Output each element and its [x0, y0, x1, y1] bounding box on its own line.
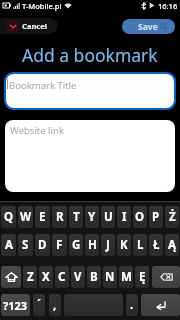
button[interactable]: S: [18, 234, 33, 256]
staticText: A: [5, 237, 13, 253]
button[interactable]: Save: [122, 19, 175, 34]
button[interactable]: P: [149, 206, 163, 228]
staticText: M: [121, 269, 132, 285]
button[interactable]: B: [87, 266, 101, 288]
button[interactable]: ?123: [1, 294, 30, 316]
button[interactable]: Shift: [1, 266, 21, 288]
staticText: 16:16: [158, 1, 178, 11]
staticText: ´: [37, 297, 42, 313]
button[interactable]: L: [133, 234, 147, 256]
button[interactable]: M: [119, 266, 133, 288]
staticText: Ż: [169, 209, 176, 225]
button[interactable]: T: [69, 206, 83, 228]
staticText: Ł: [153, 237, 160, 253]
button[interactable]: U: [101, 206, 115, 228]
button[interactable]: Y: [85, 206, 99, 228]
staticText: T: [73, 209, 80, 225]
button[interactable]: .: [126, 294, 138, 316]
staticText: Y: [88, 209, 96, 225]
button[interactable]: J: [101, 234, 115, 256]
staticText: Cancel: [22, 21, 48, 31]
staticText: Q: [4, 209, 14, 225]
staticText: P: [152, 209, 160, 225]
staticText: .: [130, 297, 134, 313]
button[interactable]: O: [133, 206, 147, 228]
button[interactable]: Cancel: [0, 18, 58, 34]
staticText: E: [39, 209, 46, 225]
staticText: B: [90, 269, 98, 285]
button[interactable]: A: [1, 234, 16, 256]
staticText: I: [122, 209, 127, 225]
button[interactable]: Bookmark Title: [4, 72, 176, 110]
button[interactable]: W: [18, 206, 33, 228]
button[interactable]: Ę: [135, 266, 149, 288]
button[interactable]: V: [71, 266, 85, 288]
button[interactable]: F: [52, 234, 67, 256]
staticText: Ę: [139, 269, 146, 285]
staticText: H: [88, 237, 97, 253]
button[interactable]: N: [103, 266, 117, 288]
staticText: W: [20, 209, 32, 225]
staticText: S: [22, 237, 29, 253]
button[interactable]: R: [52, 206, 67, 228]
button[interactable]: Q: [1, 206, 16, 228]
button[interactable]: Ą: [165, 234, 179, 256]
button[interactable]: K: [117, 234, 131, 256]
button[interactable]: Website link: [5, 120, 175, 192]
button[interactable]: Z: [23, 266, 37, 288]
staticText: Website link: [10, 124, 64, 137]
button[interactable]: Enter: [141, 294, 180, 316]
button[interactable]: H: [85, 234, 99, 256]
button[interactable]: Space: [64, 294, 123, 316]
staticText: T-Mobile.pl: [22, 1, 62, 11]
button[interactable]: C: [55, 266, 69, 288]
staticText: F: [56, 237, 63, 253]
staticText: Bookmark Title: [9, 79, 77, 92]
button[interactable]: ´: [33, 294, 45, 316]
staticText: V: [74, 269, 82, 285]
staticText: N: [105, 269, 115, 285]
staticText: L: [137, 237, 144, 253]
staticText: O: [135, 209, 145, 225]
button[interactable]: G: [69, 234, 83, 256]
staticText: ,: [53, 297, 57, 313]
staticText: Ą: [168, 237, 176, 253]
staticText: U: [104, 209, 113, 225]
staticText: G: [72, 237, 81, 253]
button[interactable]: Ż: [165, 206, 179, 228]
button[interactable]: D: [35, 234, 50, 256]
button[interactable]: X: [39, 266, 53, 288]
staticText: R: [56, 209, 64, 225]
button[interactable]: I: [117, 206, 131, 228]
staticText: Add a bookmark: [22, 43, 158, 67]
staticText: C: [58, 269, 66, 285]
staticText: D: [38, 237, 47, 253]
button[interactable]: E: [35, 206, 50, 228]
staticText: X: [42, 269, 50, 285]
staticText: ?123: [3, 298, 28, 313]
button[interactable]: Backspace: [152, 266, 180, 288]
staticText: Z: [27, 269, 34, 285]
staticText: K: [120, 237, 128, 253]
button[interactable]: Ł: [149, 234, 163, 256]
staticText: Save: [138, 21, 158, 33]
staticText: J: [106, 237, 110, 253]
button[interactable]: ,: [49, 294, 61, 316]
